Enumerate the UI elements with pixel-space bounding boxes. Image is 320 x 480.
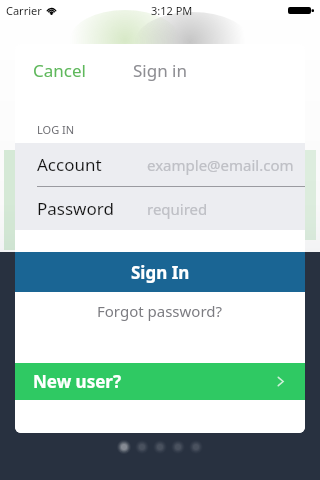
staticText: Cancel: [33, 59, 86, 82]
staticText: example@email.com: [147, 155, 294, 175]
button[interactable]: Account: [15, 143, 305, 186]
button[interactable]: New user?: [15, 363, 305, 400]
staticText: Account: [37, 153, 102, 176]
button[interactable]: Password: [15, 187, 305, 230]
staticText: required: [147, 199, 208, 219]
staticText: Forgot password?: [97, 301, 223, 321]
button[interactable]: Cancel: [31, 53, 88, 88]
button[interactable]: Forgot password?: [15, 292, 305, 330]
staticText: LOG IN: [37, 122, 75, 137]
staticText: Password: [37, 197, 114, 220]
staticText: 3:12 PM: [151, 3, 193, 18]
button[interactable]: Sign In: [15, 252, 305, 292]
staticText: Carrier: [6, 3, 42, 18]
staticText: New user?: [33, 370, 122, 393]
staticText: Sign in: [133, 59, 187, 82]
staticText: Sign In: [131, 261, 190, 284]
